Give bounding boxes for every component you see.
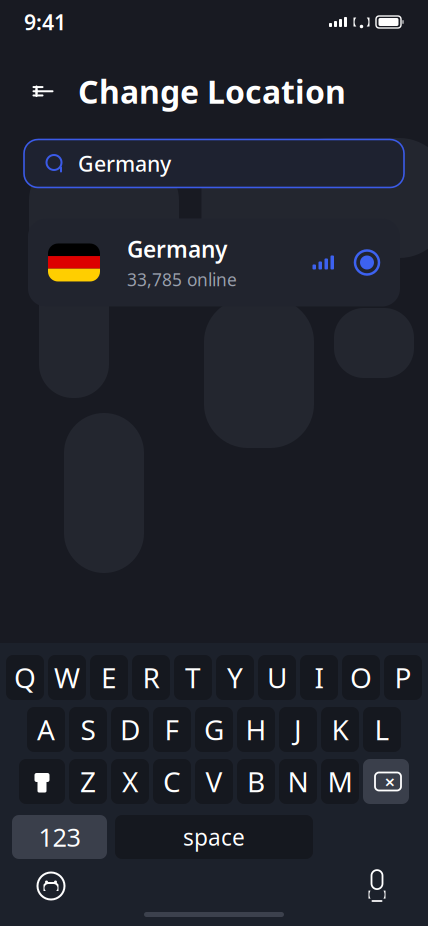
button[interactable]: M — [321, 759, 359, 804]
staticText: Q — [14, 659, 36, 696]
staticText: A — [37, 711, 55, 748]
button[interactable]: R — [132, 655, 170, 700]
staticText: H — [245, 711, 266, 748]
button[interactable]: H — [237, 707, 275, 752]
staticText: O — [350, 659, 372, 696]
button[interactable]: J — [279, 707, 317, 752]
staticText: × — [384, 769, 395, 794]
button[interactable]: I — [300, 655, 338, 700]
staticText: E — [101, 659, 117, 696]
staticText: I — [314, 659, 323, 696]
staticText: R — [142, 659, 159, 696]
button[interactable]: U — [258, 655, 296, 700]
button[interactable]: P — [384, 655, 422, 700]
button[interactable]: W — [48, 655, 86, 700]
staticText: 33,785 online — [127, 268, 237, 291]
staticText: U — [267, 659, 287, 696]
button[interactable]: 123 — [12, 815, 107, 859]
button[interactable]: Germany — [24, 139, 404, 187]
button[interactable]: D — [111, 707, 149, 752]
staticText: K — [331, 711, 348, 748]
staticText: Z — [80, 763, 96, 800]
staticText: J — [294, 711, 302, 748]
button[interactable]: Shift — [19, 759, 65, 804]
staticText: X — [122, 763, 138, 800]
button[interactable]: Back — [26, 71, 60, 111]
button[interactable]: Dictation — [357, 866, 397, 906]
staticText: T — [185, 659, 201, 696]
staticText: L — [374, 711, 389, 748]
button[interactable]: C — [153, 759, 191, 804]
staticText: P — [394, 659, 411, 696]
button[interactable]: Y — [216, 655, 254, 700]
button[interactable]: space — [115, 815, 313, 859]
staticText: G — [204, 711, 224, 748]
staticText: Y — [227, 659, 243, 696]
button[interactable]: S — [69, 707, 107, 752]
button[interactable]: Germany — [28, 218, 400, 306]
button[interactable]: N — [279, 759, 317, 804]
staticText: D — [120, 711, 140, 748]
staticText: M — [327, 763, 352, 800]
staticText: 123 — [38, 820, 80, 854]
button[interactable]: Emoji — [31, 866, 71, 906]
button[interactable]: L — [363, 707, 401, 752]
staticText: Germany — [127, 234, 227, 264]
button[interactable]: G — [195, 707, 233, 752]
button[interactable]: F — [153, 707, 191, 752]
button[interactable]: K — [321, 707, 359, 752]
staticText: W — [54, 659, 80, 696]
staticText: space — [183, 822, 245, 852]
button[interactable]: X — [111, 759, 149, 804]
button[interactable]: T — [174, 655, 212, 700]
staticText: S — [80, 711, 95, 748]
button[interactable]: Q — [6, 655, 44, 700]
button[interactable]: A — [27, 707, 65, 752]
button[interactable]: V — [195, 759, 233, 804]
staticText: Germany — [78, 149, 171, 178]
button[interactable]: B — [237, 759, 275, 804]
button[interactable]: E — [90, 655, 128, 700]
staticText: B — [247, 763, 265, 800]
staticText: F — [164, 711, 179, 748]
staticText: V — [205, 763, 222, 800]
staticText: 9:41 — [24, 8, 66, 36]
button[interactable]: Delete — [363, 759, 409, 804]
staticText: Change Location — [78, 70, 346, 112]
button[interactable]: O — [342, 655, 380, 700]
staticText: C — [163, 763, 181, 800]
button[interactable]: Z — [69, 759, 107, 804]
staticText: N — [287, 763, 308, 800]
